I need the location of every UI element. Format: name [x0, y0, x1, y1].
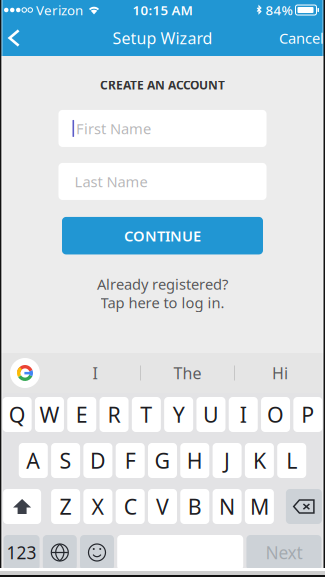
staticText: T: [140, 400, 152, 429]
staticText: L: [286, 446, 297, 475]
staticText: Hi: [272, 362, 288, 384]
staticText: S: [60, 446, 72, 475]
button[interactable]: H: [180, 443, 209, 478]
button[interactable]: Switch keyboard: [43, 535, 77, 570]
staticText: Already registered?: [97, 274, 228, 294]
button[interactable]: J: [213, 443, 242, 478]
staticText: N: [219, 492, 235, 521]
staticText: Q: [9, 400, 26, 429]
staticText: I: [92, 362, 97, 384]
button[interactable]: S: [51, 443, 80, 478]
staticText: G: [154, 446, 170, 475]
staticText: Last Name: [74, 172, 147, 191]
staticText: E: [76, 400, 88, 429]
staticText: CONTINUE: [124, 226, 201, 245]
staticText: Z: [60, 492, 72, 521]
button[interactable]: Cancel: [269, 19, 325, 57]
button[interactable]: G: [148, 443, 177, 478]
staticText: W: [39, 400, 59, 429]
staticText: J: [224, 446, 230, 475]
button[interactable]: N: [213, 489, 242, 524]
staticText: M: [250, 492, 269, 521]
staticText: R: [107, 400, 120, 429]
staticText: X: [91, 492, 104, 521]
button[interactable]: D: [83, 443, 112, 478]
button[interactable]: I: [229, 397, 258, 432]
staticText: P: [301, 400, 314, 429]
staticText: Tap here to log in.: [100, 293, 224, 312]
staticText: 123: [7, 541, 37, 564]
staticText: 10:15 AM: [132, 1, 192, 19]
button[interactable]: C: [116, 489, 145, 524]
staticText: C: [124, 492, 137, 521]
button[interactable]: Y: [164, 397, 193, 432]
staticText: A: [26, 446, 40, 475]
staticText: Verizon: [36, 1, 83, 19]
staticText: I: [240, 400, 247, 429]
staticText: H: [187, 446, 203, 475]
button[interactable]: K: [245, 443, 274, 478]
button[interactable]: E: [67, 397, 96, 432]
button[interactable]: B: [180, 489, 209, 524]
staticText: Cancel: [279, 28, 324, 48]
staticText: The: [173, 362, 201, 384]
button[interactable]: First Name: [58, 110, 266, 147]
button[interactable]: Emoji: [80, 535, 114, 570]
button[interactable]: O: [261, 397, 290, 432]
staticText: K: [253, 446, 266, 475]
button[interactable]: R: [99, 397, 128, 432]
button[interactable]: Delete: [286, 489, 322, 524]
staticText: V: [156, 492, 169, 521]
staticText: B: [188, 492, 202, 521]
staticText: First Name: [76, 119, 151, 138]
staticText: U: [203, 400, 219, 429]
button[interactable]: Q: [3, 397, 32, 432]
button[interactable]: I: [50, 356, 140, 390]
button[interactable]: A: [19, 443, 48, 478]
button[interactable]: V: [148, 489, 177, 524]
button[interactable]: L: [277, 443, 306, 478]
button[interactable]: M: [245, 489, 274, 524]
staticText: Y: [173, 400, 185, 429]
button[interactable]: The: [141, 356, 234, 390]
button[interactable]: Z: [51, 489, 80, 524]
staticText: CREATE AN ACCOUNT: [100, 77, 225, 93]
staticText: Setup Wizard: [112, 27, 212, 49]
button[interactable]: X: [83, 489, 112, 524]
button[interactable]: P: [293, 397, 322, 432]
button[interactable]: Last Name: [58, 163, 266, 200]
staticText: F: [125, 446, 136, 475]
button[interactable]: Already registered?: [97, 274, 228, 312]
button[interactable]: Hi: [235, 356, 325, 390]
button[interactable]: U: [196, 397, 225, 432]
staticText: Next: [265, 541, 302, 564]
button[interactable]: Next: [246, 535, 321, 570]
button[interactable]: Shift: [3, 489, 41, 524]
button[interactable]: T: [132, 397, 161, 432]
button[interactable]: W: [35, 397, 64, 432]
button[interactable]: 123: [4, 535, 40, 570]
button[interactable]: Back: [0, 21, 32, 55]
button[interactable]: CONTINUE: [62, 217, 263, 254]
staticText: 84%: [265, 1, 292, 19]
staticText: O: [267, 400, 284, 429]
button[interactable]: F: [116, 443, 145, 478]
staticText: D: [90, 446, 106, 475]
